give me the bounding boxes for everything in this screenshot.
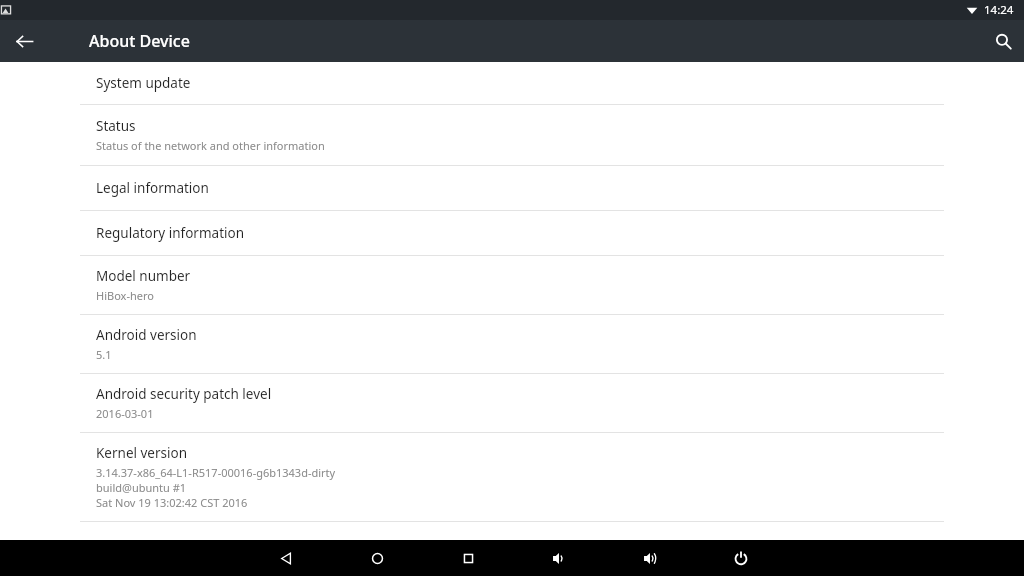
staticText: Regulatory information [96,224,245,242]
staticText: System update [96,74,191,92]
staticText: Android security patch level [96,385,272,403]
button[interactable]: System update [0,62,1024,104]
button[interactable]: Android version [0,315,1024,373]
button[interactable]: Recent apps [450,540,486,576]
staticText: Status of the network and other informat… [96,138,325,153]
staticText: Sat Nov 19 13:02:42 CST 2016 [96,495,248,510]
staticText: Model number [96,267,191,285]
staticText: Legal information [96,179,209,197]
staticText: 5.1 [96,347,112,362]
button[interactable]: Legal information [0,166,1024,210]
button[interactable]: Home [359,540,395,576]
button[interactable]: Back [268,540,304,576]
staticText: Kernel version [96,444,188,462]
button[interactable]: Volume down [541,540,577,576]
button[interactable]: Model number [0,256,1024,314]
staticText: 14:24 [984,2,1014,18]
button[interactable]: Search [982,20,1024,62]
button[interactable]: Kernel version [0,433,1024,521]
button[interactable]: Status [0,105,1024,165]
staticText: Status [96,117,136,135]
staticText: HiBox-hero [96,288,154,303]
staticText: 3.14.37-x86_64-L1-R517-00016-g6b1343d-di… [96,465,336,480]
button[interactable]: Regulatory information [0,211,1024,255]
staticText: About Device [89,30,190,52]
button[interactable]: Back [0,20,48,62]
staticText: build@ubuntu #1 [96,480,187,495]
button[interactable]: Volume up [632,540,668,576]
button[interactable]: Power [723,540,759,576]
button[interactable]: Android security patch level [0,374,1024,432]
staticText: 2016-03-01 [96,406,154,421]
staticText: Android version [96,326,197,344]
